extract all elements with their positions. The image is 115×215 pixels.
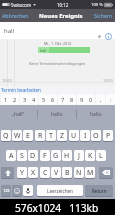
staticText: A: [9, 151, 14, 161]
button[interactable]: R: [35, 130, 45, 141]
button[interactable]: L: [96, 150, 106, 161]
staticText: D: [30, 151, 36, 161]
button[interactable]: D: [28, 150, 38, 161]
button[interactable]: Abbrechen: [2, 12, 29, 19]
button[interactable]: I: [80, 130, 90, 141]
button[interactable]: Dictation: [23, 185, 33, 196]
staticText: 6: [51, 96, 55, 104]
button[interactable]: 8: [67, 94, 76, 105]
staticText: hall: [4, 27, 15, 35]
staticText: Q: [3, 131, 9, 141]
staticText: Z: [60, 131, 65, 141]
staticText: 5: [42, 96, 46, 104]
button[interactable]: ,: [96, 94, 105, 105]
button[interactable]: T: [46, 130, 56, 141]
button[interactable]: B: [62, 167, 72, 178]
button[interactable]: G: [51, 150, 61, 161]
button[interactable]: O: [91, 130, 101, 141]
staticText: Leerzeichen: [47, 188, 73, 194]
button[interactable]: U: [69, 130, 79, 141]
button[interactable]: W: [12, 130, 22, 141]
button[interactable]: 2: [10, 94, 19, 105]
staticText: O: [93, 131, 99, 141]
button[interactable]: N: [74, 167, 84, 178]
button[interactable]: V: [51, 167, 61, 178]
staticText: 9: [80, 96, 84, 104]
button[interactable]: 3: [20, 94, 29, 105]
staticText: U: [71, 131, 77, 141]
staticText: 2: [13, 96, 17, 104]
staticText: Swisscom: [11, 2, 32, 8]
button[interactable]: hallo: [77, 105, 115, 124]
button[interactable]: Emoji: [12, 185, 22, 196]
staticText: 123: [3, 188, 10, 193]
button[interactable]: 6: [48, 94, 57, 105]
staticText: Neues Ereignis: [39, 12, 83, 20]
staticText: Sichern: [94, 12, 113, 19]
staticText: Y: [20, 168, 24, 178]
staticText: R: [38, 131, 43, 141]
staticText: 10:00: [103, 78, 113, 83]
staticText: Return: [92, 188, 107, 194]
button[interactable]: 5: [39, 94, 48, 105]
staticText: Keine Terminbenachrichtigungen: [29, 61, 86, 66]
button[interactable]: 9: [77, 94, 86, 105]
staticText: T: [49, 131, 53, 141]
button[interactable]: Z: [57, 130, 67, 141]
button[interactable]: Return: [85, 185, 113, 196]
staticText: 1: [4, 96, 8, 104]
button[interactable]: Termin bearbeiten: [1, 86, 41, 94]
staticText: X: [31, 168, 36, 178]
staticText: J: [78, 151, 80, 161]
staticText: K: [88, 151, 93, 161]
button[interactable]: C: [40, 167, 50, 178]
button[interactable]: H: [62, 150, 72, 161]
button[interactable]: hall: [0, 22, 115, 39]
button[interactable]: Info: [105, 33, 112, 40]
button[interactable]: :: [106, 94, 115, 105]
button[interactable]: M: [85, 167, 95, 178]
staticText: 100 %: [91, 2, 103, 8]
button[interactable]: 1: [1, 94, 10, 105]
button[interactable]: Shift: [1, 167, 14, 178]
button[interactable]: Y: [17, 167, 27, 178]
button[interactable]: K: [85, 150, 95, 161]
button[interactable]: Leerzeichen: [37, 185, 83, 196]
staticText: ,: [100, 96, 102, 104]
button[interactable]: „hall“: [0, 105, 37, 124]
staticText: 10:12: [57, 2, 69, 8]
staticText: Termin bearbeiten: [1, 87, 41, 93]
button[interactable]: S: [17, 150, 27, 161]
button[interactable]: E: [23, 130, 33, 141]
button[interactable]: hallo: [38, 105, 76, 124]
staticText: L: [99, 151, 103, 161]
button[interactable]: Backspace: [99, 167, 113, 178]
staticText: W: [14, 131, 21, 141]
button[interactable]: J: [74, 150, 84, 161]
staticText: :: [110, 96, 112, 104]
staticText: „hall“: [12, 111, 25, 118]
button[interactable]: Q: [1, 130, 11, 141]
staticText: B: [65, 168, 70, 178]
button[interactable]: Numbers: [1, 185, 11, 196]
staticText: M: [87, 168, 94, 178]
staticText: N: [76, 168, 82, 178]
staticText: 10:00: [2, 78, 12, 83]
button[interactable]: Sichern: [94, 12, 113, 19]
button[interactable]: 4: [29, 94, 38, 105]
staticText: H: [64, 151, 70, 161]
staticText: 3: [23, 96, 27, 104]
staticText: S: [20, 151, 24, 161]
staticText: G: [53, 151, 59, 161]
staticText: hallo: [51, 111, 63, 118]
button[interactable]: F: [40, 150, 50, 161]
button[interactable]: 7: [58, 94, 67, 105]
button[interactable]: X: [28, 167, 38, 178]
button[interactable]: P: [103, 130, 113, 141]
staticText: 0: [89, 96, 93, 104]
button[interactable]: A: [6, 150, 16, 161]
button[interactable]: hall: [38, 47, 90, 53]
button[interactable]: 0: [86, 94, 95, 105]
staticText: I: [84, 131, 87, 141]
staticText: Mi., 1. Okt. 2014: [44, 41, 72, 46]
